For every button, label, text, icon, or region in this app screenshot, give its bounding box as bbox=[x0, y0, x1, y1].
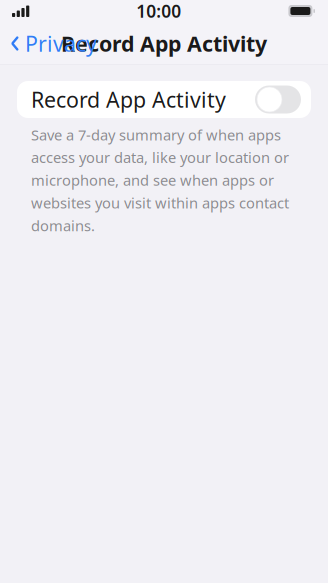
staticText: 10:00 bbox=[136, 0, 181, 22]
staticText: Record App Activity bbox=[61, 29, 267, 58]
button[interactable]: Record App Activity bbox=[17, 81, 311, 118]
staticText: Privacy bbox=[25, 29, 97, 58]
staticText: Save a 7-day summary of when apps access… bbox=[31, 125, 289, 235]
button[interactable]: Privacy bbox=[0, 23, 105, 63]
staticText: Record App Activity bbox=[31, 85, 226, 114]
